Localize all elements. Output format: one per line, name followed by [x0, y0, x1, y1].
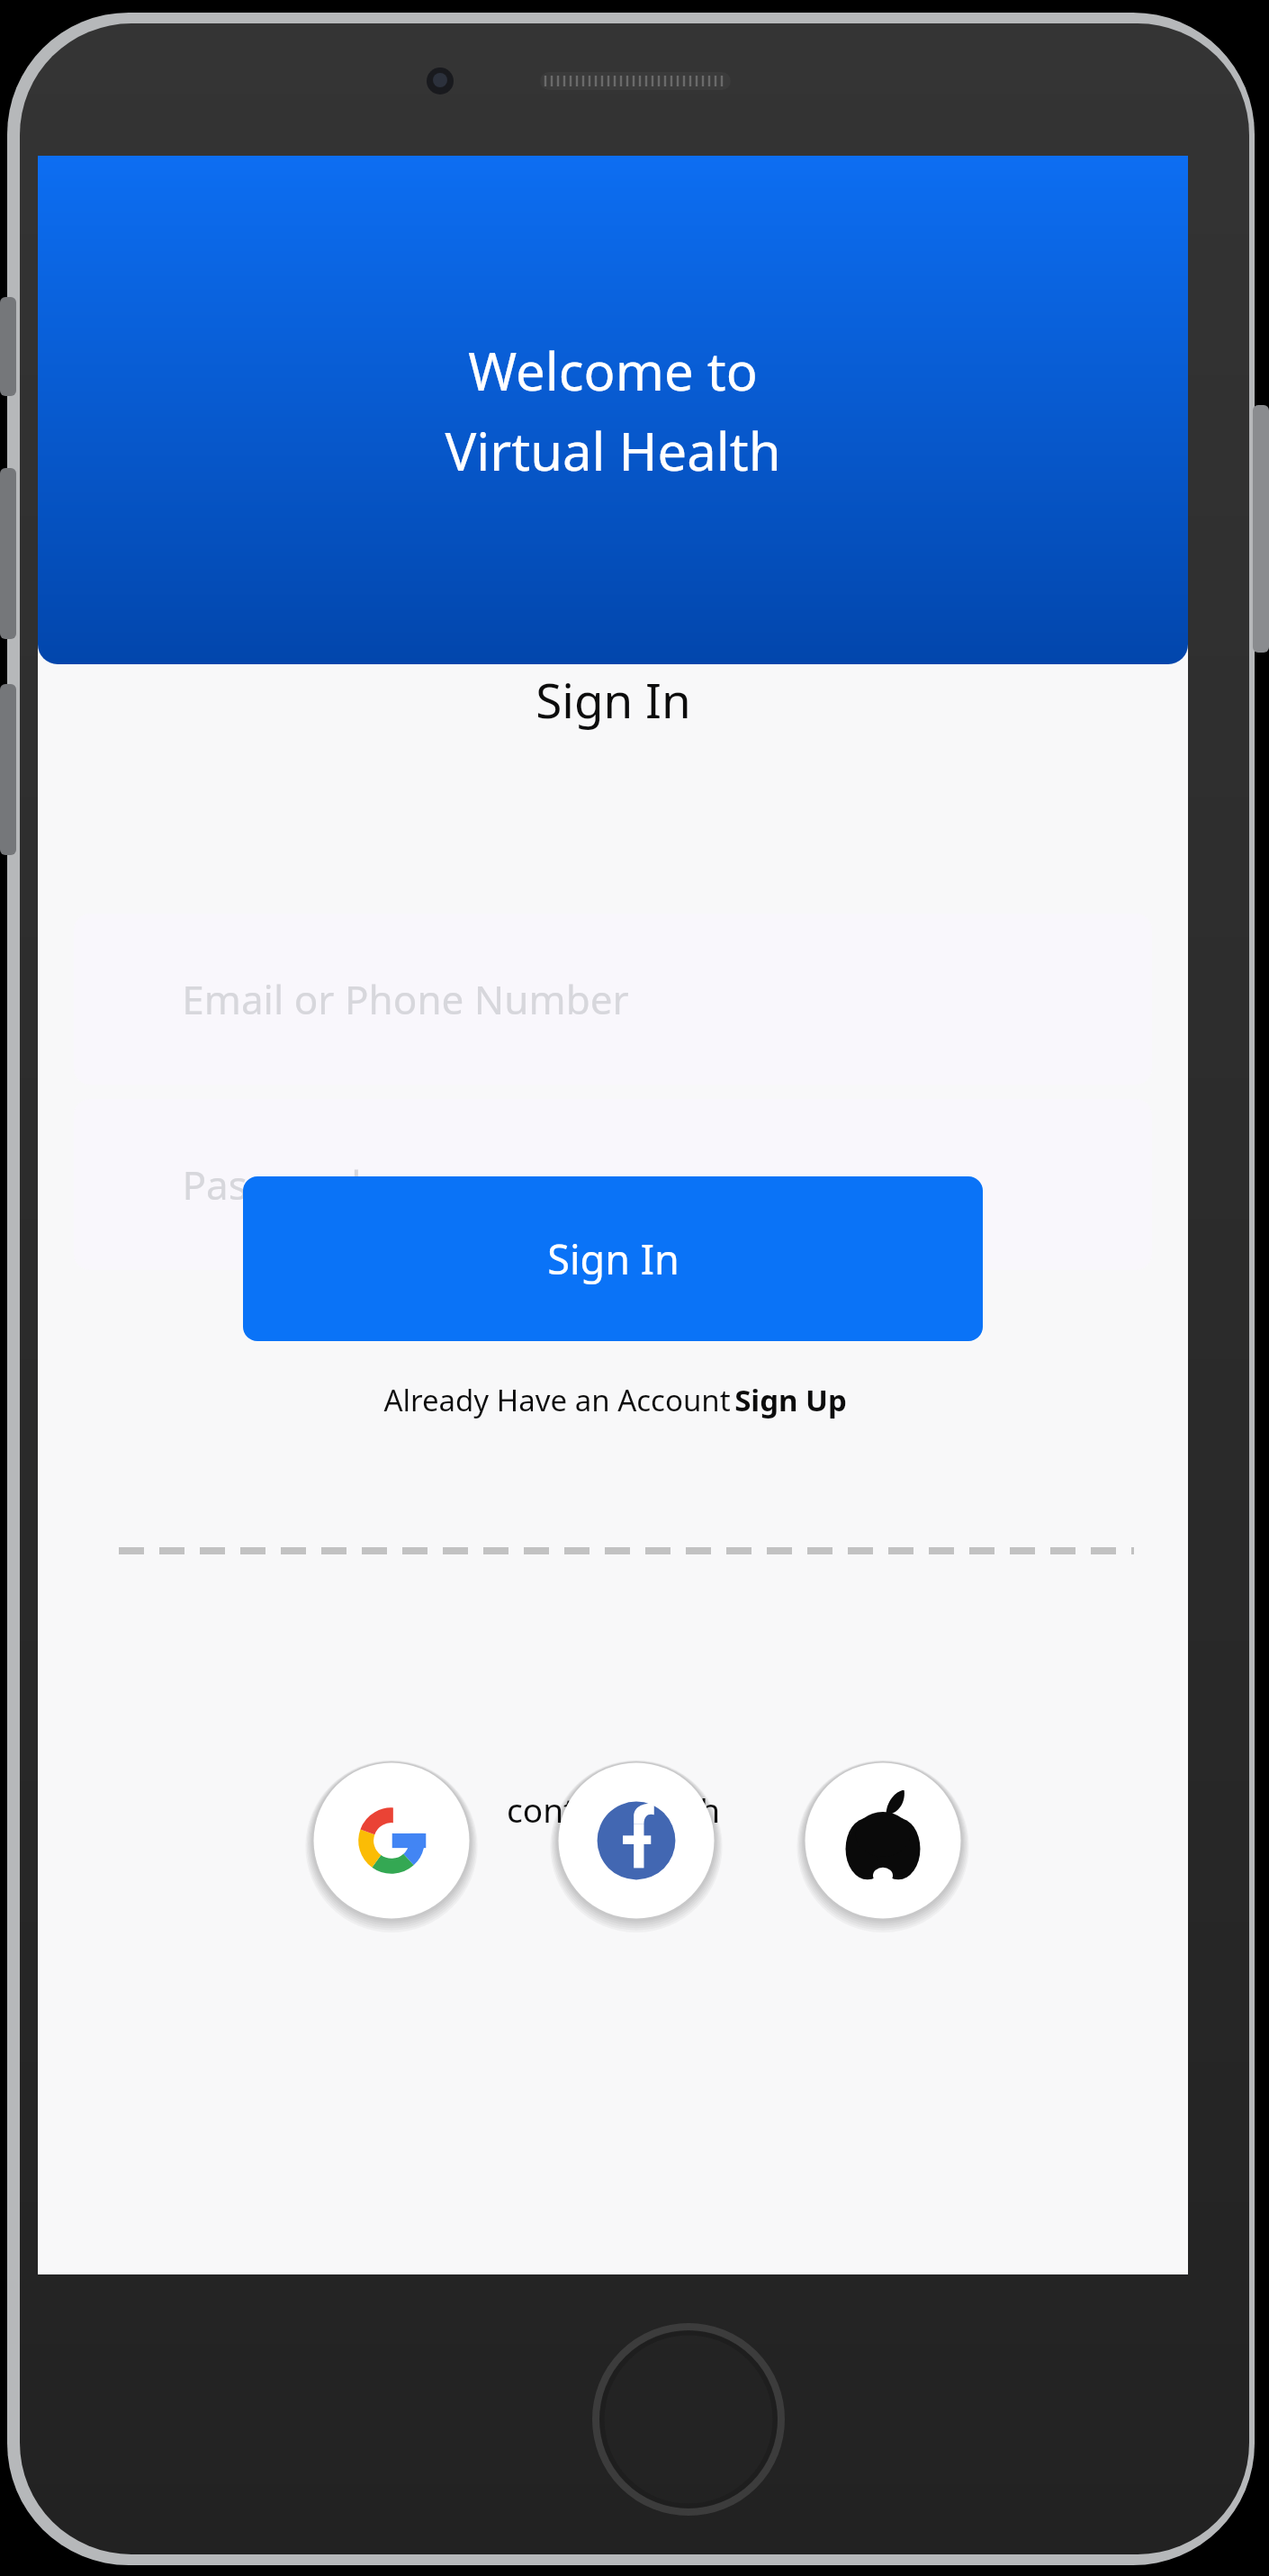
staticText: Password: [182, 1157, 362, 1211]
staticText: Sign In: [547, 1231, 679, 1286]
button[interactable]: Sign in with Apple: [800, 1758, 966, 1923]
staticText: Virtual Health: [445, 415, 781, 486]
staticText: Email or Phone Number: [182, 972, 629, 1026]
button[interactable]: Sign in with Google: [309, 1758, 474, 1923]
button[interactable]: Sign in with Facebook: [553, 1758, 719, 1923]
staticText: Sign Up: [734, 1380, 847, 1420]
button[interactable]: Password: [74, 1099, 1152, 1270]
staticText: Welcome to: [468, 335, 758, 406]
button[interactable]: Sign Up: [734, 1380, 847, 1420]
staticText: Already Have an Account: [380, 1380, 734, 1420]
button[interactable]: Sign In: [243, 1176, 983, 1341]
staticText: continue with: [507, 1787, 720, 1832]
staticText: Sign In: [535, 667, 691, 732]
button[interactable]: Email or Phone Number: [74, 914, 1152, 1085]
